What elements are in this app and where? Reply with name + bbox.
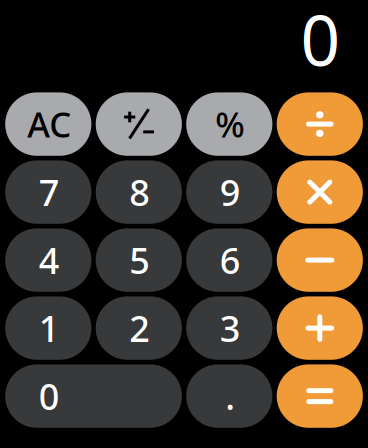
- staticText: 7: [39, 168, 60, 216]
- button[interactable]: Decimal point: [186, 364, 272, 428]
- button[interactable]: 9: [186, 160, 272, 224]
- button[interactable]: Plus Minus: [96, 92, 182, 156]
- staticText: 9: [220, 168, 241, 216]
- button[interactable]: 3: [186, 296, 272, 360]
- button[interactable]: 8: [96, 160, 182, 224]
- staticText: 6: [220, 236, 241, 284]
- button[interactable]: Percent: [186, 92, 272, 156]
- button[interactable]: 6: [186, 228, 272, 292]
- staticText: %: [215, 101, 245, 147]
- staticText: 4: [39, 236, 60, 284]
- staticText: AC: [27, 101, 71, 147]
- button[interactable]: 5: [96, 228, 182, 292]
- staticText: 0: [39, 372, 60, 420]
- button[interactable]: 7: [5, 160, 91, 224]
- button[interactable]: Equals: [277, 364, 363, 428]
- button[interactable]: Multiply: [277, 160, 363, 224]
- staticText: 1: [39, 304, 60, 352]
- button[interactable]: Plus: [277, 296, 363, 360]
- staticText: 3: [220, 304, 241, 352]
- button[interactable]: Divide: [277, 92, 363, 156]
- button[interactable]: 1: [5, 296, 91, 360]
- staticText: 8: [129, 168, 150, 216]
- button[interactable]: 0: [5, 364, 182, 428]
- button[interactable]: AC: [5, 92, 91, 156]
- staticText: 5: [129, 236, 150, 284]
- button[interactable]: 2: [96, 296, 182, 360]
- staticText: 2: [129, 304, 150, 352]
- button[interactable]: 4: [5, 228, 91, 292]
- staticText: .: [225, 372, 235, 420]
- button[interactable]: Minus: [277, 228, 363, 292]
- staticText: 0: [300, 0, 340, 85]
